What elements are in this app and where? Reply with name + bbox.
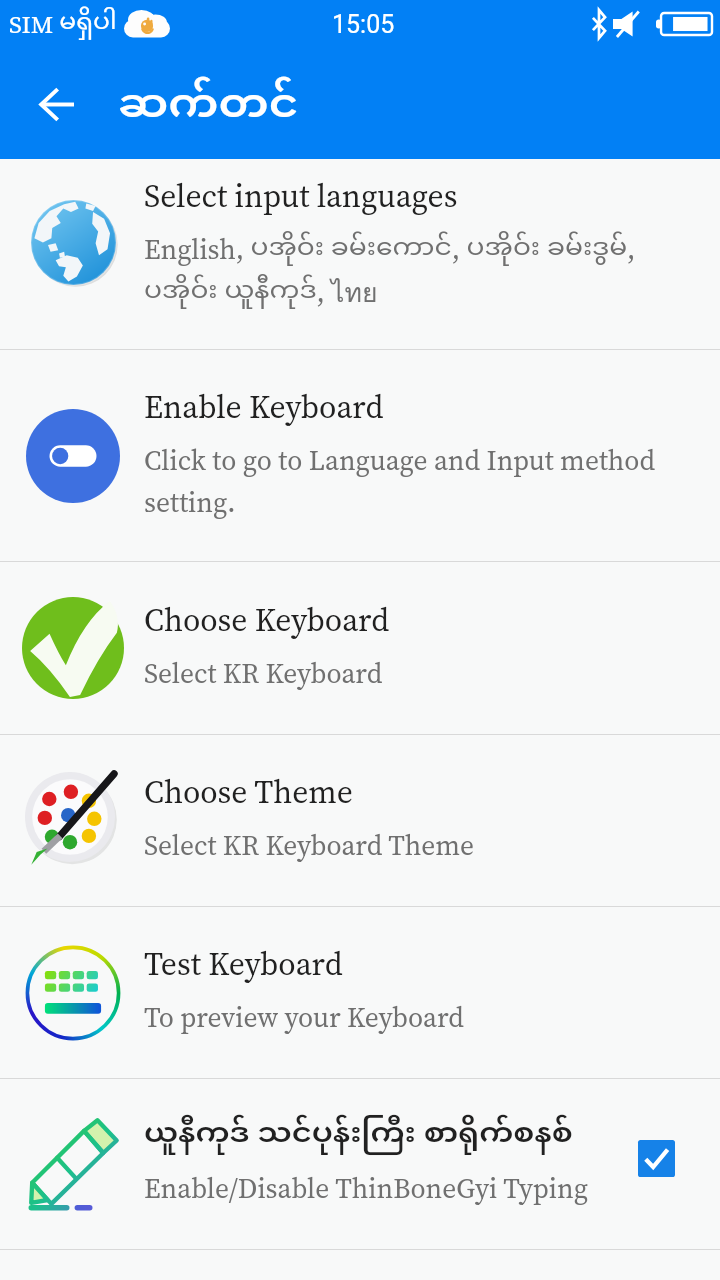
- staticText: Select KR Keyboard Theme: [144, 827, 475, 865]
- button[interactable]: Enable Keyboard: [0, 350, 720, 561]
- button[interactable]: Back: [19, 66, 95, 142]
- button[interactable]: Select input languages: [0, 159, 720, 349]
- button[interactable]: Test Keyboard: [0, 907, 720, 1078]
- staticText: ဆက်တင်: [118, 76, 299, 137]
- button[interactable]: Choose Keyboard: [0, 562, 720, 734]
- staticText: Choose Keyboard: [144, 598, 390, 641]
- staticText: SIM မရှိပါ: [9, 6, 117, 41]
- staticText: Choose Theme: [144, 770, 353, 813]
- staticText: To preview your Keyboard: [144, 999, 464, 1037]
- staticText: Select input languages: [144, 174, 458, 217]
- staticText: English, ပအိုဝ်း ခမ်းကောင်, ပအိုဝ်း ခမ်း…: [144, 231, 636, 314]
- staticText: Test Keyboard: [144, 942, 343, 985]
- staticText: ယူနီကုဒ် သင်ပုန်းကြီး စာရိုက်စနစ်: [144, 1114, 573, 1156]
- staticText: Enable/Disable ThinBoneGyi Typing: [144, 1170, 588, 1208]
- button[interactable]: ယူနီကုဒ် သင်ပုန်းကြီး စာရိုက်စနစ်: [0, 1079, 720, 1249]
- button[interactable]: Choose Theme: [0, 735, 720, 906]
- staticText: Select KR Keyboard: [144, 655, 383, 693]
- staticText: Click to go to Language and Input method…: [144, 442, 656, 521]
- staticText: 15:05: [332, 10, 395, 39]
- button[interactable]: Enable ThinBoneGyi typing: [638, 1140, 675, 1177]
- staticText: Enable Keyboard: [144, 385, 384, 428]
